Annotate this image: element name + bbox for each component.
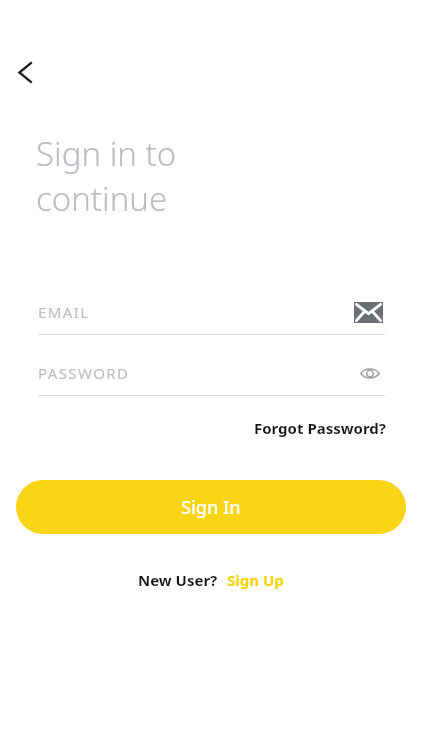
staticText: PASSWORD (38, 363, 130, 383)
button[interactable]: PASSWORD (38, 351, 385, 395)
button[interactable]: Forgot Password? (247, 412, 392, 444)
staticText: continue (36, 176, 168, 221)
button[interactable]: Sign Up (227, 570, 284, 590)
button[interactable]: Show password (355, 358, 385, 388)
staticText: EMAIL (38, 302, 90, 322)
staticText: Sign Up (227, 570, 284, 590)
button[interactable]: Email (351, 295, 385, 329)
staticText: Sign In (181, 495, 241, 520)
button[interactable]: EMAIL (38, 290, 385, 334)
staticText: Sign in to (36, 131, 177, 176)
button[interactable]: Sign In (16, 480, 406, 534)
staticText: Forgot Password? (253, 418, 386, 438)
button[interactable]: Back (5, 52, 45, 92)
staticText: New User? (138, 570, 218, 590)
